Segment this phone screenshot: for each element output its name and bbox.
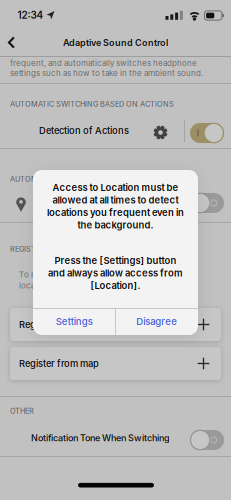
staticText: frequent, and automatically switches hea… — [10, 58, 197, 68]
staticText: Register from map — [19, 358, 99, 369]
staticText: Detection of Actions — [39, 125, 129, 136]
button[interactable]: Disagree — [116, 308, 198, 335]
staticText: Register this location — [19, 319, 110, 330]
staticText: the background. — [77, 219, 153, 231]
staticText: locations you frequent even in — [47, 207, 184, 218]
staticText: Detection of Locations — [39, 197, 138, 209]
staticText: 12:34 — [17, 9, 43, 21]
staticText: Disagree — [136, 316, 177, 327]
button[interactable]: Register from map — [0, 0, 231, 500]
staticText: Adaptive Sound Control — [63, 37, 168, 48]
staticText: settings such as how to take in the ambi… — [10, 68, 203, 78]
button[interactable]: Detection of Locations — [0, 0, 231, 500]
staticText: Access to Location must be — [52, 182, 178, 193]
button[interactable]: Detection of Actions settings — [0, 0, 231, 500]
staticText: AUTOMATIC SWITCHING BASED ON LOCATIONS — [10, 175, 183, 183]
staticText: Notification Tone When Switching — [31, 432, 170, 443]
button[interactable]: Detection of Actions — [0, 0, 231, 500]
staticText: AUTOMATIC SWITCHING BASED ON ACTIONS — [10, 100, 174, 108]
button[interactable]: Notification Tone When Switching — [0, 0, 231, 500]
staticText: Settings — [56, 316, 93, 327]
button[interactable]: Back — [0, 0, 231, 500]
staticText: REGISTERED LOCATIONS — [10, 245, 99, 253]
button[interactable]: Settings — [33, 308, 115, 335]
staticText: [Location]. — [90, 280, 140, 291]
staticText: allowed at all times to detect — [52, 194, 178, 206]
staticText: locations must be detected first. — [19, 281, 144, 290]
staticText: Press the [Settings] button — [54, 255, 176, 266]
staticText: OTHER — [10, 407, 34, 415]
staticText: and always allow access from — [48, 267, 183, 279]
staticText: To register a location you frequent, — [19, 270, 154, 279]
button[interactable]: Register this location — [0, 0, 231, 500]
